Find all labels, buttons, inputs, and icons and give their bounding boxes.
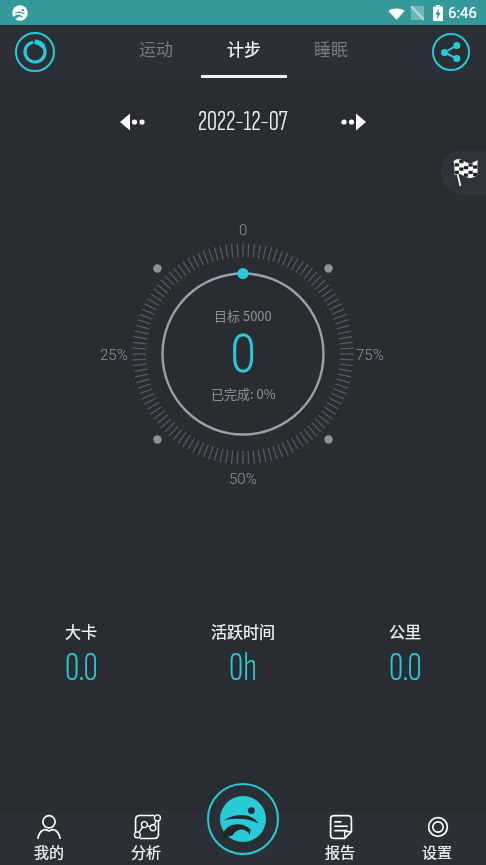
staticText: 运动	[139, 36, 173, 61]
staticText: 2022-12-07	[198, 105, 288, 139]
button[interactable]: 大卡	[0, 619, 162, 692]
staticText: 活跃时间	[211, 619, 276, 642]
button[interactable]: 睡眠	[287, 25, 374, 79]
staticText: 大卡	[65, 619, 98, 642]
staticText: 我的	[34, 841, 65, 863]
button[interactable]: 运动	[112, 25, 200, 79]
staticText: 计步	[227, 36, 261, 61]
staticText: 25%	[100, 346, 128, 364]
staticText: 0.0	[65, 644, 98, 692]
button[interactable]: Share	[429, 30, 473, 74]
staticText: 0.0	[389, 644, 422, 692]
staticText: 0	[239, 221, 248, 239]
button[interactable]: Start activity	[205, 792, 281, 846]
staticText: 目标 5000	[214, 306, 272, 325]
staticText: 分析	[131, 841, 162, 863]
staticText: 报告	[325, 841, 356, 863]
staticText: 0	[230, 322, 257, 385]
button[interactable]: 活跃时间	[162, 619, 324, 692]
staticText: 6:46	[448, 4, 477, 22]
button[interactable]: 设置	[389, 811, 486, 865]
staticText: 0h	[229, 644, 257, 692]
button[interactable]: 我的	[0, 811, 98, 865]
staticText: 50%	[229, 470, 257, 488]
staticText: 设置	[422, 841, 453, 863]
button[interactable]: Refresh	[13, 30, 57, 74]
staticText: 公里	[389, 619, 422, 642]
button[interactable]: Next day	[334, 105, 374, 139]
button[interactable]: 计步	[200, 25, 287, 79]
button[interactable]: 报告	[292, 811, 389, 865]
staticText: 75%	[356, 346, 384, 364]
staticText: 已完成: 0%	[211, 384, 276, 403]
button[interactable]: Previous day	[112, 105, 152, 139]
button[interactable]: 分析	[98, 811, 195, 865]
staticText: 睡眠	[314, 36, 348, 61]
button[interactable]: Goal	[441, 150, 486, 195]
button[interactable]: 公里	[324, 619, 486, 692]
